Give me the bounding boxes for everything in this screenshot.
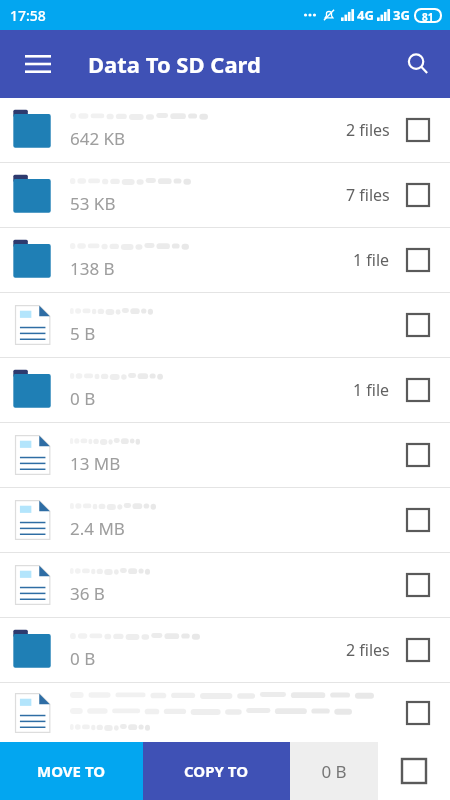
staticText: 1 file (353, 249, 390, 271)
staticText: MOVE TO (37, 761, 106, 781)
button[interactable]: COPY TO (143, 742, 290, 800)
button[interactable]: 13 MB (0, 423, 450, 487)
staticText: 4G (357, 6, 374, 24)
button[interactable]: Select all (378, 742, 450, 800)
button[interactable]: Search (394, 40, 442, 88)
button[interactable]: Select item (396, 498, 440, 542)
staticText: 138 B (70, 257, 115, 280)
staticText: 1 file (353, 379, 390, 401)
button[interactable]: 36 B (0, 553, 450, 617)
button[interactable]: 0 B (0, 358, 450, 422)
button[interactable]: 53 KB (0, 163, 450, 227)
staticText: 5 B (70, 322, 96, 345)
button[interactable]: Select item (396, 433, 440, 477)
staticText: 53 KB (70, 192, 116, 215)
staticText: 36 B (70, 582, 105, 605)
button[interactable]: 138 B (0, 228, 450, 292)
staticText: 0 B (321, 760, 347, 783)
staticText: 0 B (70, 647, 96, 670)
staticText: 3G (393, 6, 410, 24)
staticText: COPY TO (184, 761, 249, 781)
button[interactable]: Select item (396, 173, 440, 217)
staticText: 2 files (346, 639, 390, 661)
staticText: Data To SD Card (88, 49, 261, 79)
staticText: 81 (422, 10, 434, 21)
button[interactable]: 642 KB (0, 98, 450, 162)
button[interactable]: Select item (396, 303, 440, 347)
button[interactable]: Select item (396, 691, 440, 735)
button[interactable]: Select item (396, 238, 440, 282)
button[interactable]: Select item (396, 563, 440, 607)
button[interactable]: Open navigation menu (14, 40, 62, 88)
button[interactable]: Select item (396, 628, 440, 672)
button[interactable]: Select item (0, 683, 450, 742)
button[interactable]: 2.4 MB (0, 488, 450, 552)
staticText: 0 B (70, 387, 96, 410)
button[interactable]: Select item (396, 108, 440, 152)
staticText: 7 files (346, 184, 390, 206)
staticText: 17:58 (10, 6, 46, 25)
staticText: 2 files (346, 119, 390, 141)
button[interactable]: 5 B (0, 293, 450, 357)
staticText: 642 KB (70, 127, 126, 150)
button[interactable]: MOVE TO (0, 742, 143, 800)
staticText: 13 MB (70, 452, 121, 475)
staticText: 2.4 MB (70, 517, 125, 540)
button[interactable]: Select item (396, 368, 440, 412)
button[interactable]: 0 B (0, 618, 450, 682)
